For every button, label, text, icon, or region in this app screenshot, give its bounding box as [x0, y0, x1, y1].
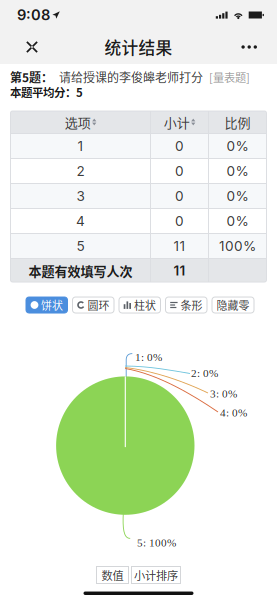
button[interactable]: 数值 [96, 566, 128, 583]
staticText: 1 [77, 138, 83, 154]
staticText: 饼状 [41, 297, 63, 313]
staticText: 条形 [180, 297, 202, 313]
staticText: 选项 [65, 112, 91, 131]
staticText: 2: 0% [191, 367, 218, 379]
staticText: 4 [76, 213, 85, 229]
staticText: 本题平均分：5 [10, 84, 83, 100]
staticText: 请给授课的李俊皞老师打分 [53, 68, 209, 86]
button[interactable]: Close [15, 30, 49, 64]
staticText: 0% [226, 138, 248, 154]
staticText: 100% [219, 238, 256, 254]
staticText: 9:08 [17, 6, 50, 24]
staticText: 本题有效填写人次 [28, 261, 132, 280]
staticText: 小计排序 [134, 567, 178, 583]
staticText: 0 [175, 213, 184, 229]
staticText: 5: 100% [137, 536, 176, 549]
staticText: 比例 [224, 112, 250, 131]
button[interactable]: 圆环 [72, 297, 114, 313]
button[interactable]: 隐藏零 [212, 297, 254, 313]
staticText: 统计结果 [104, 35, 172, 59]
staticText: 3: 0% [210, 387, 237, 400]
staticText: 0 [175, 188, 184, 204]
button[interactable]: 饼状 [26, 297, 67, 313]
staticText: 柱状 [134, 297, 156, 313]
staticText: 11 [173, 262, 185, 279]
staticText: 5 [76, 238, 84, 254]
staticText: 0% [226, 188, 248, 204]
staticText: 0 [175, 138, 184, 154]
staticText: 0% [226, 213, 248, 229]
staticText: 圆环 [87, 297, 109, 313]
staticText: 2 [76, 163, 84, 179]
staticText: [量表题] [209, 69, 250, 85]
staticText: 4: 0% [220, 406, 247, 419]
staticText: 数值 [101, 567, 123, 583]
button[interactable]: 柱状 [119, 297, 160, 313]
staticText: 1: 0% [135, 351, 162, 363]
button[interactable]: 小计排序 [131, 566, 180, 583]
staticText: 0 [175, 163, 184, 179]
staticText: 隐藏零 [216, 297, 249, 313]
staticText: 3 [76, 188, 84, 204]
staticText: 第5题： [10, 68, 53, 86]
staticText: 11 [173, 238, 185, 254]
button[interactable]: More options [232, 30, 266, 64]
staticText: 0% [226, 163, 248, 179]
staticText: 小计 [164, 112, 190, 131]
button[interactable]: 条形 [165, 297, 207, 313]
